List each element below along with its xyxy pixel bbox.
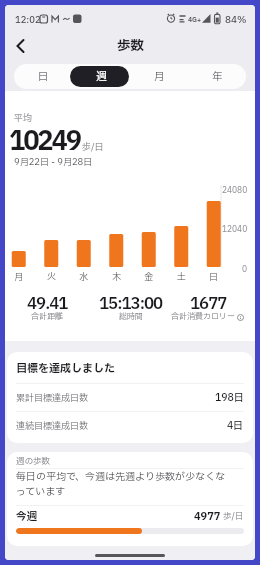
staticText: 週 (96, 69, 107, 85)
staticText: 月 (14, 270, 24, 283)
staticText: 総時間 (119, 311, 143, 323)
staticText: 10249 (9, 122, 80, 161)
staticText: 日 (38, 69, 49, 85)
staticText: 歩/日 (82, 140, 104, 153)
staticText: 15:13:00 (99, 292, 163, 316)
staticText: 火 (47, 270, 57, 283)
button[interactable]: 目標を達成しました (7, 352, 253, 443)
staticText: 24080 (222, 185, 248, 197)
staticText: 年 (212, 69, 223, 85)
staticText: 84% (225, 13, 247, 27)
staticText: 歩数 (117, 36, 144, 56)
staticText: 4G+ (188, 15, 202, 25)
staticText: 累計目標達成日数 (16, 391, 89, 404)
staticText: 4日 (227, 418, 244, 433)
staticText: 12040 (222, 224, 248, 236)
staticText: 木 (112, 270, 122, 283)
staticText: 今週 (16, 509, 37, 525)
staticText: 198日 (215, 390, 244, 405)
staticText: 週の歩数 (16, 455, 51, 468)
staticText: 合計消費カロリー (171, 311, 235, 323)
staticText: 歩/日 (221, 510, 244, 523)
staticText: 4977 (194, 509, 221, 525)
staticText: 土 (177, 270, 187, 283)
button[interactable]: 日 (14, 64, 72, 89)
button[interactable]: 年 (188, 64, 246, 89)
staticText: 49.41 (27, 292, 68, 316)
staticText: 合計距離 (31, 311, 63, 323)
staticText: 日 (209, 270, 219, 283)
staticText: 1677 (190, 292, 227, 316)
staticText: 0 (242, 264, 248, 276)
staticText: 連続目標達成日数 (16, 419, 89, 432)
staticText: 目標を達成しました (16, 360, 115, 377)
staticText: 水 (79, 270, 89, 283)
staticText: 毎日の平均で、今週は先週より歩数が少なくな っています (16, 469, 225, 499)
staticText: 9月22日 - 9月28日 (14, 155, 93, 168)
button[interactable]: 週 (72, 64, 130, 89)
button[interactable]: 週の歩数 (7, 452, 253, 546)
button[interactable]: 月 (130, 64, 188, 89)
staticText: 12:02 (15, 13, 41, 26)
button[interactable] (7, 33, 33, 58)
staticText: 金 (144, 270, 154, 283)
staticText: 平均 (14, 111, 33, 124)
staticText: 月 (154, 69, 165, 85)
